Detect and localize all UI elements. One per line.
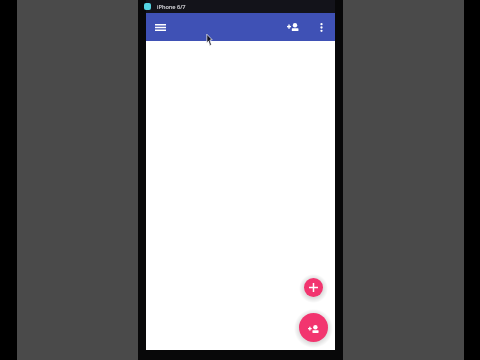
button[interactable]: Add person bbox=[280, 13, 307, 41]
staticText: iPhone 6/7 bbox=[157, 3, 186, 11]
button[interactable]: Open navigation drawer bbox=[149, 13, 171, 41]
button[interactable]: New conversation bbox=[304, 278, 323, 297]
button[interactable]: Add contact bbox=[299, 313, 328, 342]
button[interactable]: More options bbox=[311, 13, 332, 41]
